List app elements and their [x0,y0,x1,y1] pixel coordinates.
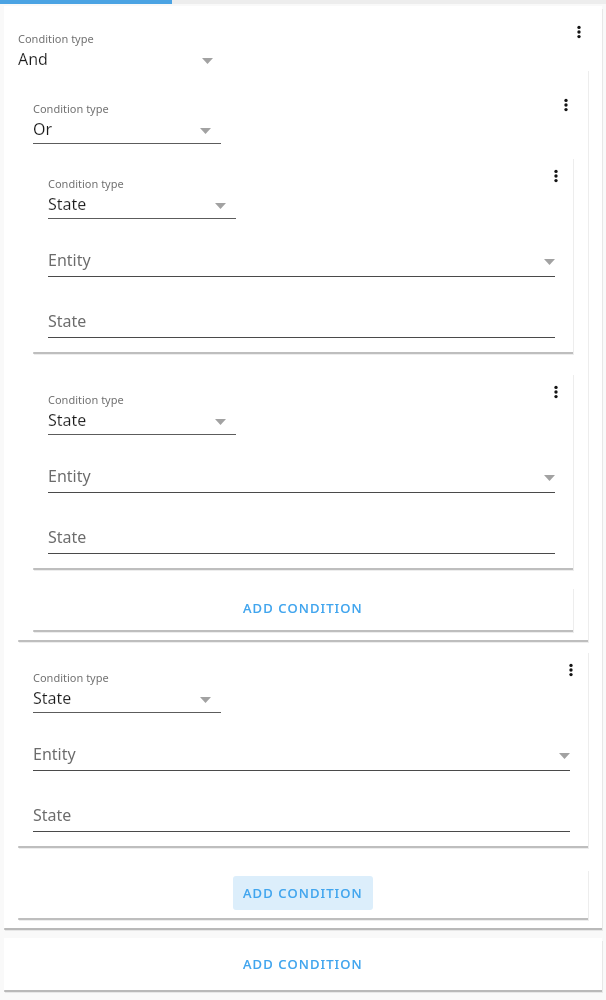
staticText: State [33,687,72,709]
staticText: ADD CONDITION [243,955,363,973]
button[interactable]: Condition type [48,392,236,435]
staticText: Condition type [18,31,94,46]
staticText: State [48,310,87,332]
button[interactable]: Condition type [48,176,236,219]
staticText: Entity [48,249,91,271]
staticText: Entity [33,743,76,765]
staticText: And [18,48,48,70]
staticText: Condition type [33,101,109,116]
button[interactable]: ADD CONDITION [33,586,573,630]
button[interactable]: ADD CONDITION [18,868,588,918]
staticText: State [48,409,87,431]
staticText: State [48,193,87,215]
staticText: ADD CONDITION [243,599,363,617]
button[interactable]: State [48,526,555,554]
staticText: State [33,804,72,826]
button[interactable]: More options [556,655,586,685]
button[interactable]: ADD CONDITION [4,938,602,990]
button[interactable]: Condition type [33,101,221,144]
button[interactable]: Condition type [33,670,221,713]
button[interactable]: State [48,310,555,338]
button[interactable]: More options [551,90,581,120]
staticText: Or [33,118,53,140]
button[interactable]: More options [564,17,594,47]
staticText: Entity [48,465,91,487]
staticText: Condition type [48,392,124,407]
staticText: State [48,526,87,548]
staticText: ADD CONDITION [243,884,363,902]
button[interactable]: Condition type [18,31,223,74]
staticText: Condition type [48,176,124,191]
button[interactable]: Entity [48,249,555,277]
button[interactable]: Entity [33,743,570,771]
button[interactable]: Entity [48,465,555,493]
staticText: Condition type [33,670,109,685]
button[interactable]: More options [541,377,571,407]
button[interactable]: State [33,804,570,832]
button[interactable]: More options [541,161,571,191]
